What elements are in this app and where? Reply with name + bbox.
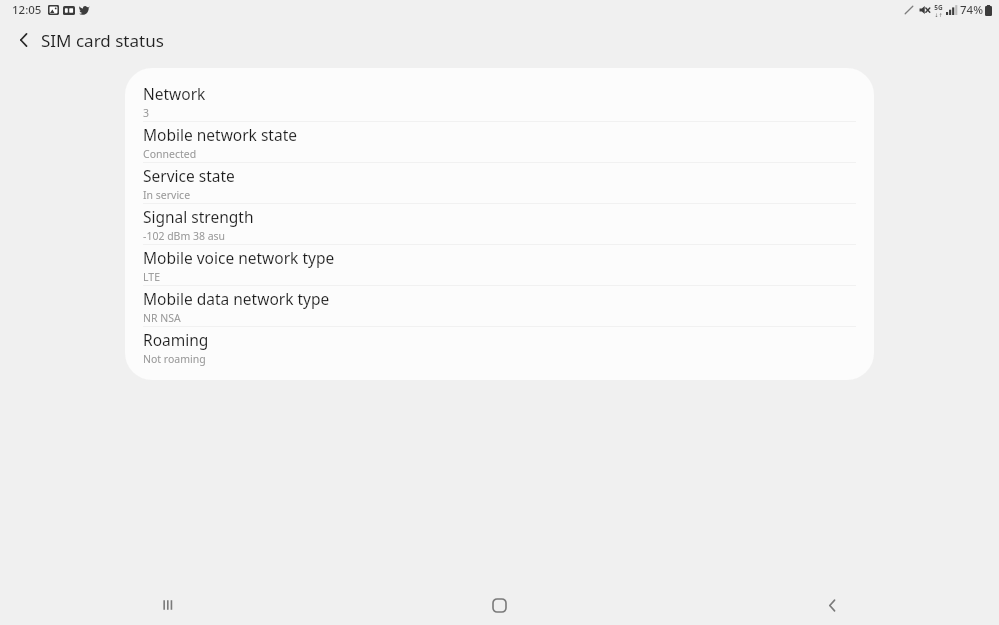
button[interactable]: Network — [125, 81, 874, 122]
button[interactable]: Roaming — [125, 327, 874, 367]
button[interactable]: Back — [666, 585, 999, 625]
button[interactable]: Mobile voice network type — [125, 245, 874, 286]
button[interactable]: Recent apps — [0, 585, 333, 625]
button[interactable]: Back — [8, 24, 40, 56]
button[interactable]: Service state — [125, 163, 874, 204]
button[interactable]: Home — [333, 585, 666, 625]
staticText: In service — [143, 188, 191, 202]
staticText: 5G — [934, 3, 943, 12]
button[interactable]: Signal strength — [125, 204, 874, 245]
staticText: Connected — [143, 147, 197, 161]
staticText: 12:05 — [12, 2, 42, 18]
staticText: ↓↑ — [934, 12, 943, 17]
staticText: 3 — [143, 106, 150, 120]
staticText: Service state — [143, 165, 235, 186]
staticText: LTE — [143, 270, 160, 284]
staticText: NR NSA — [143, 311, 181, 325]
staticText: Not roaming — [143, 352, 206, 366]
button[interactable]: Mobile data network type — [125, 286, 874, 327]
staticText: Signal strength — [143, 206, 254, 227]
staticText: -102 dBm 38 asu — [143, 229, 226, 243]
staticText: Roaming — [143, 329, 209, 350]
staticText: Network — [143, 83, 206, 104]
staticText: SIM card status — [41, 29, 164, 52]
staticText: Mobile network state — [143, 124, 297, 145]
button[interactable]: Mobile network state — [125, 122, 874, 163]
staticText: Mobile data network type — [143, 288, 330, 309]
staticText: 74% — [960, 2, 983, 18]
staticText: Mobile voice network type — [143, 247, 335, 268]
